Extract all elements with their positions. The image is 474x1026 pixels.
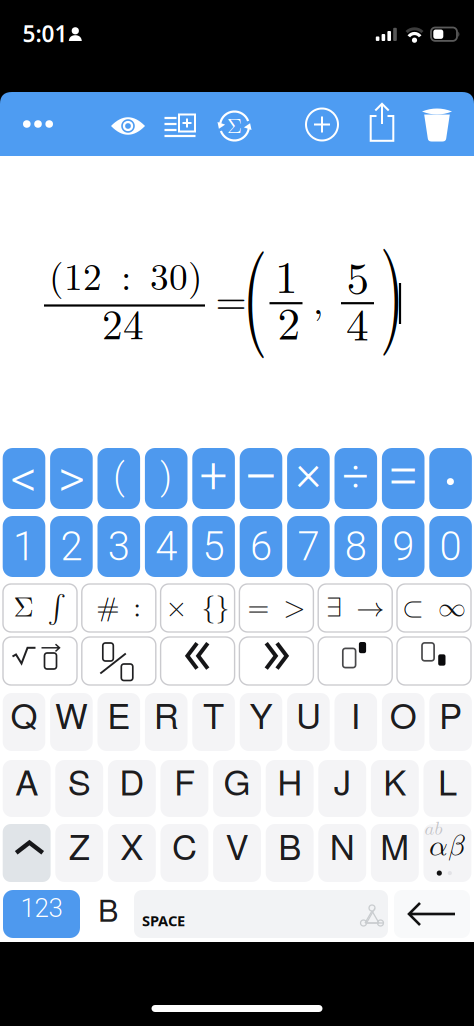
button[interactable]: O	[382, 693, 424, 751]
button[interactable]: ⊂ ∞	[397, 584, 471, 632]
button[interactable]: Z	[55, 824, 103, 882]
staticText: 24	[102, 293, 144, 351]
button[interactable]: 7	[287, 516, 330, 577]
staticText: ⊂ ∞	[402, 594, 466, 622]
button[interactable]: 4	[145, 516, 187, 577]
button[interactable]: New expression	[305, 107, 339, 141]
staticText: S	[68, 756, 91, 805]
button[interactable]: Σ ∫	[3, 584, 77, 632]
button[interactable]: −	[240, 448, 282, 509]
button[interactable]: ∃ →	[318, 584, 392, 632]
button[interactable]: 5	[192, 516, 235, 577]
staticText: I	[351, 689, 361, 739]
staticText: × {}	[166, 594, 230, 622]
button[interactable]: W	[50, 693, 93, 751]
button[interactable]: Fraction	[82, 637, 156, 685]
staticText: 3	[108, 523, 130, 570]
button[interactable]: 9	[382, 516, 424, 577]
staticText: O	[390, 689, 417, 739]
staticText: G	[224, 756, 251, 805]
button[interactable]: Share	[369, 102, 394, 142]
button[interactable]: Subscript	[397, 637, 471, 685]
button[interactable]: H	[266, 760, 314, 817]
button[interactable]: M	[371, 824, 419, 882]
staticText: −	[243, 440, 279, 514]
button[interactable]: 6	[240, 516, 282, 577]
staticText: B	[98, 886, 118, 930]
button[interactable]: 123	[3, 890, 80, 938]
button[interactable]: Add matrix	[163, 112, 196, 139]
button[interactable]: 8	[334, 516, 377, 577]
button[interactable]: 1	[3, 516, 45, 577]
button[interactable]: V	[213, 824, 261, 882]
staticText: =	[215, 269, 246, 326]
button[interactable]: Decimal point	[429, 448, 472, 509]
button[interactable]: F	[160, 760, 208, 817]
button[interactable]: Greek letters	[423, 824, 471, 882]
staticText: 𝑎𝑏	[424, 820, 442, 838]
button[interactable]: X	[108, 824, 156, 882]
button[interactable]: ÷	[334, 448, 377, 509]
button[interactable]: ×	[287, 448, 330, 509]
button[interactable]: L	[423, 760, 471, 817]
staticText: Y	[249, 689, 272, 739]
button[interactable]: +	[192, 448, 235, 509]
button[interactable]: B	[86, 890, 130, 938]
button[interactable]: =	[382, 448, 424, 509]
button[interactable]: Y	[240, 693, 282, 751]
staticText: = >	[247, 594, 305, 622]
button[interactable]: E	[97, 693, 140, 751]
staticText: 123	[20, 893, 62, 923]
button[interactable]: )	[145, 448, 187, 509]
button[interactable]: S	[55, 760, 103, 817]
button[interactable]: J	[318, 760, 366, 817]
staticText: B	[278, 820, 301, 870]
button[interactable]: Move left	[161, 637, 235, 685]
button[interactable]: 2	[50, 516, 93, 577]
button[interactable]: 0	[429, 516, 472, 577]
staticText: Q	[10, 689, 37, 739]
button[interactable]: P	[429, 693, 472, 751]
button[interactable]: Space	[134, 890, 388, 938]
button[interactable]: # :	[82, 584, 156, 632]
staticText: ,	[313, 272, 323, 325]
button[interactable]: C	[160, 824, 208, 882]
button[interactable]: Backspace	[394, 890, 470, 938]
button[interactable]: >	[50, 448, 93, 509]
button[interactable]: 3	[97, 516, 140, 577]
staticText: ×	[295, 444, 321, 502]
button[interactable]: (	[97, 448, 140, 509]
button[interactable]: = >	[239, 584, 313, 632]
button[interactable]: K	[371, 760, 419, 817]
staticText: ∃ →	[326, 594, 384, 622]
button[interactable]: Preview	[108, 108, 148, 144]
staticText: 5	[346, 243, 369, 308]
staticText: J	[334, 756, 351, 805]
button[interactable]: I	[334, 693, 377, 751]
button[interactable]: B	[266, 824, 314, 882]
button[interactable]: × {}	[161, 584, 235, 632]
staticText: R	[154, 689, 179, 739]
button[interactable]: Q	[3, 693, 45, 751]
staticText: =	[387, 442, 419, 510]
button[interactable]: R	[145, 693, 187, 751]
button[interactable]: Delete	[422, 105, 452, 142]
button[interactable]: D	[108, 760, 156, 817]
button[interactable]: A	[3, 760, 51, 817]
button[interactable]: More	[19, 106, 57, 142]
staticText: 1	[275, 242, 298, 306]
staticText: 1	[13, 523, 35, 570]
button[interactable]: Move right	[239, 637, 313, 685]
button[interactable]: Square root and vector	[3, 637, 77, 685]
button[interactable]: T	[192, 693, 235, 751]
staticText: )	[160, 456, 172, 498]
button[interactable]: N	[318, 824, 366, 882]
button[interactable]: U	[287, 693, 330, 751]
button[interactable]: Superscript	[318, 637, 392, 685]
staticText: (	[234, 211, 275, 362]
button[interactable]: <	[3, 448, 45, 509]
button[interactable]: G	[213, 760, 261, 817]
button[interactable]: Recalculate	[215, 107, 253, 145]
button[interactable]: Shift	[3, 824, 51, 882]
staticText: Σ ∫	[13, 594, 66, 622]
